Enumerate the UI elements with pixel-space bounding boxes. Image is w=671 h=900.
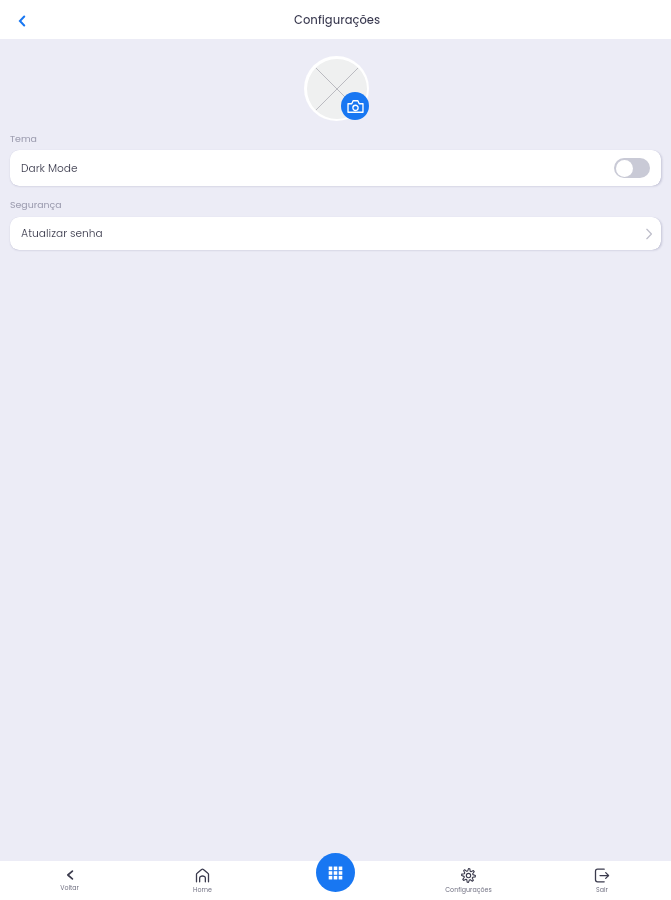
button[interactable]: Dark Mode (10, 150, 661, 186)
button[interactable]: Sair (535, 861, 668, 900)
button[interactable]: Alterar foto de perfil (304, 56, 369, 121)
staticText: Atualizar senha (21, 226, 103, 241)
staticText: Configurações (294, 12, 381, 28)
button[interactable]: Home (136, 861, 269, 900)
button[interactable]: Dark Mode (614, 158, 650, 178)
button[interactable]: Atualizar senha (10, 217, 661, 250)
staticText: Configurações (445, 885, 492, 894)
button[interactable]: Alterar foto (341, 92, 369, 120)
button[interactable]: Configurações (402, 861, 535, 900)
staticText: Segurança (10, 198, 62, 211)
staticText: Tema (10, 132, 37, 145)
button[interactable]: Voltar (8, 7, 35, 34)
button[interactable]: Menu (316, 853, 355, 892)
staticText: Sair (596, 885, 608, 894)
button[interactable]: Voltar (3, 861, 136, 900)
staticText: Dark Mode (21, 161, 78, 176)
staticText: Home (193, 885, 212, 894)
staticText: Voltar (60, 883, 79, 892)
